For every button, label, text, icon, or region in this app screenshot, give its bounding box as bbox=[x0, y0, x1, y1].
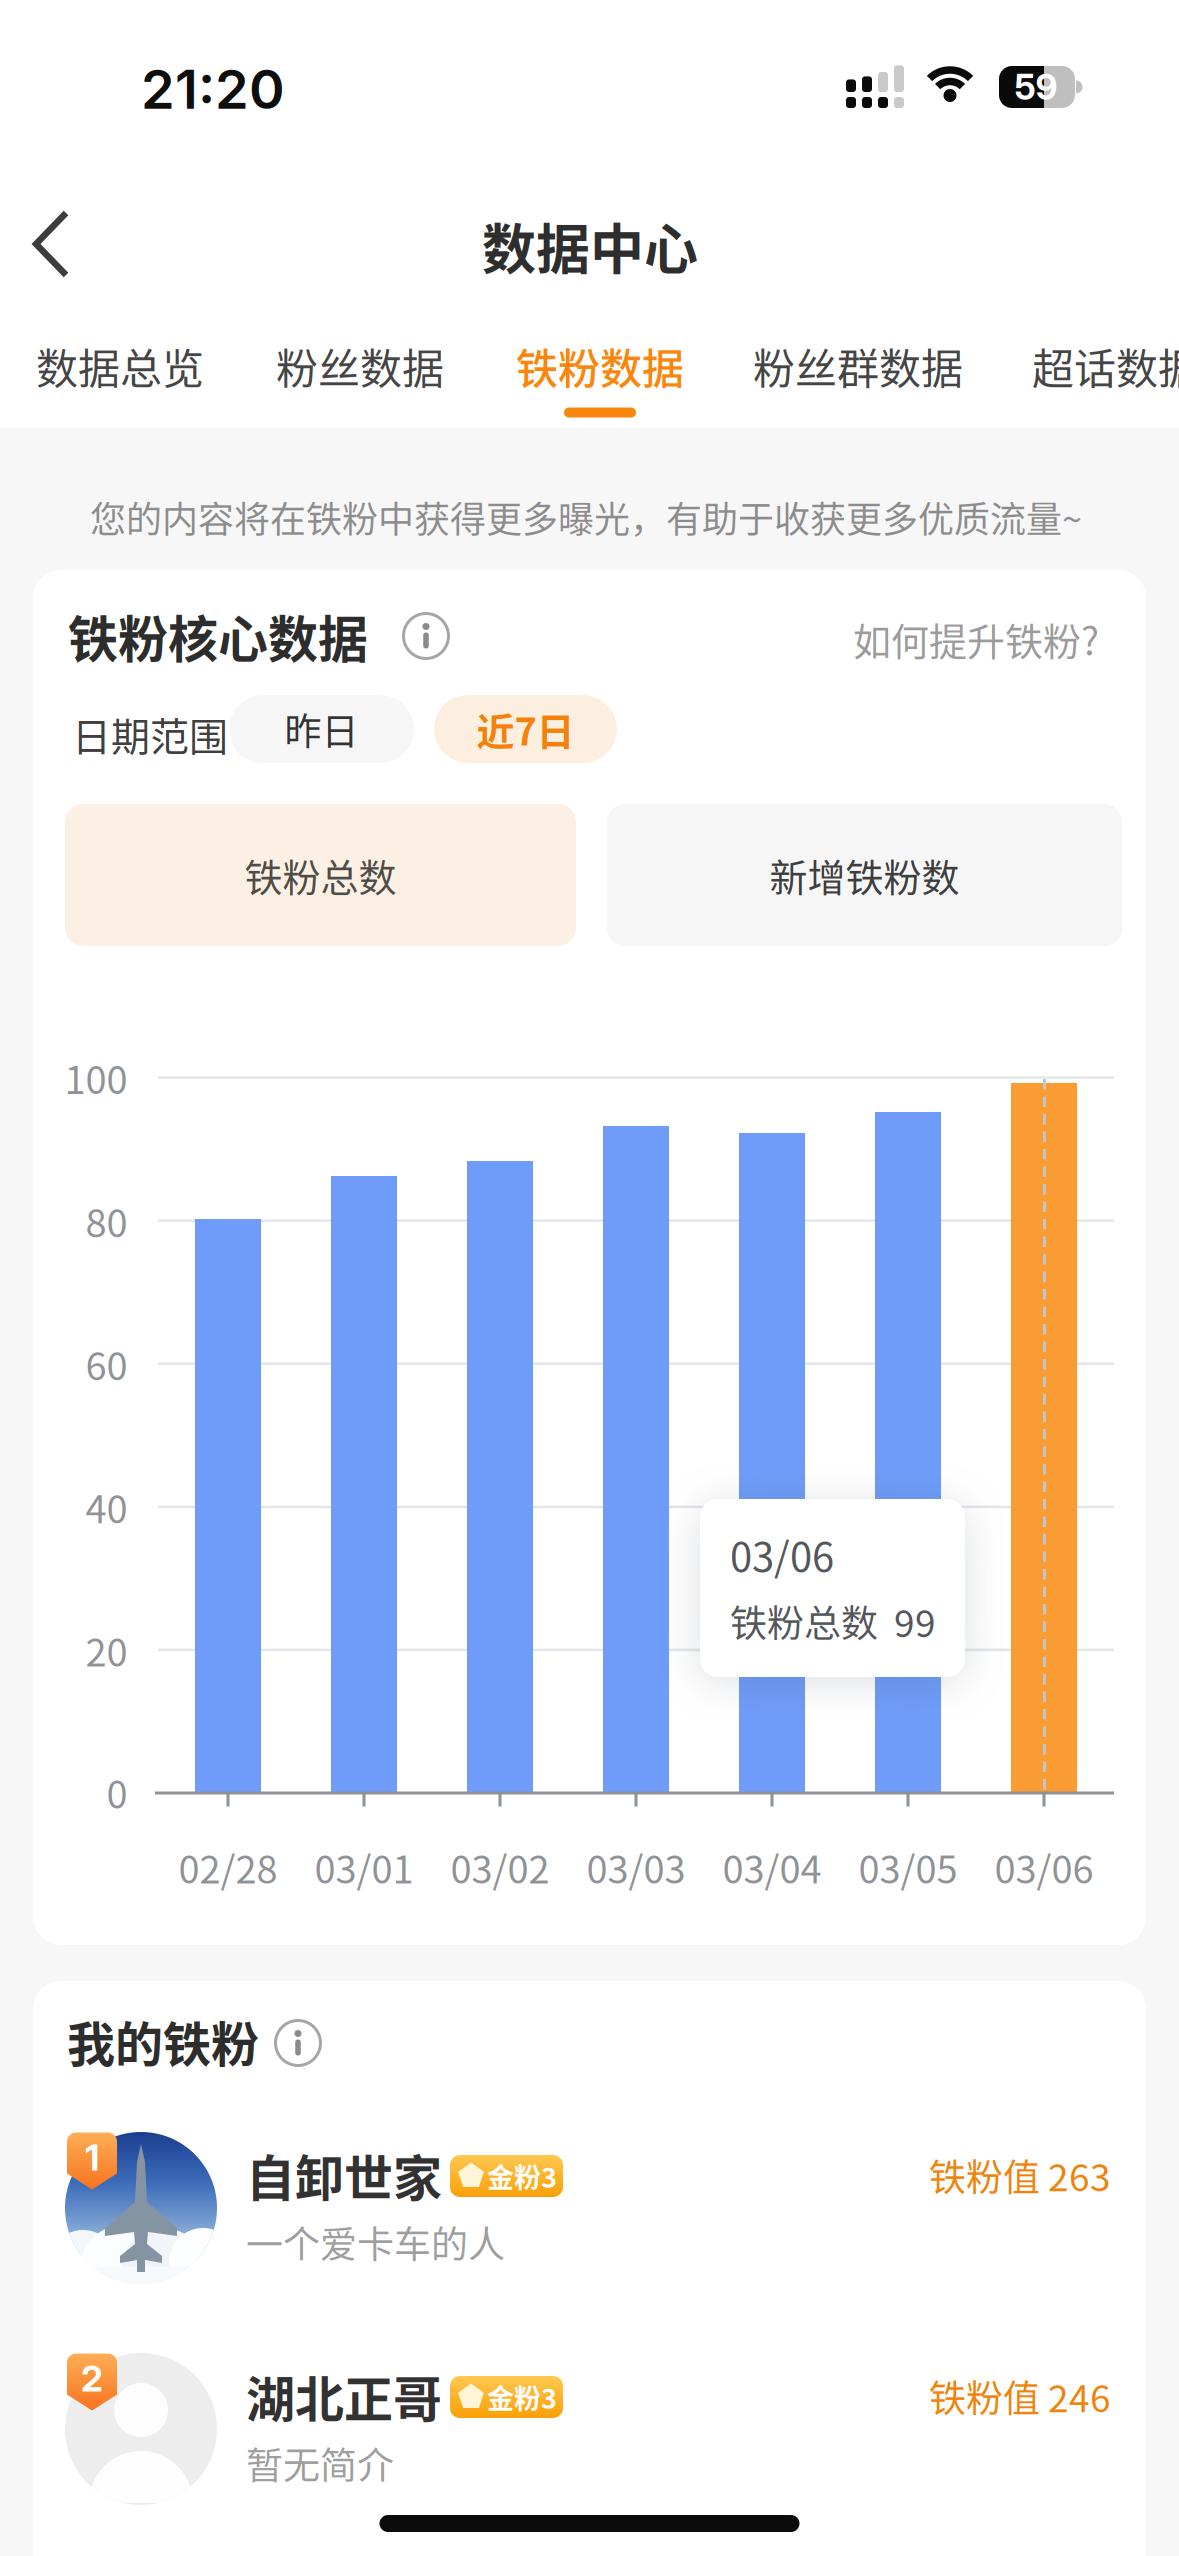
staticText: 超话数据 bbox=[1032, 336, 1179, 396]
staticText: 100 bbox=[64, 1050, 127, 1105]
staticText: 金粉3 bbox=[487, 2377, 557, 2417]
staticText: 80 bbox=[85, 1193, 127, 1248]
staticText: 03/03 bbox=[586, 1839, 685, 1894]
staticText: 03/04 bbox=[722, 1839, 821, 1894]
button[interactable]: Back bbox=[21, 209, 81, 279]
button[interactable]: 1 bbox=[33, 2098, 1146, 2318]
button[interactable]: Info bbox=[275, 2020, 321, 2066]
staticText: 铁粉总数 99 bbox=[730, 1594, 936, 1648]
button[interactable]: 如何提升铁粉? bbox=[779, 611, 1099, 666]
staticText: 您的内容将在铁粉中获得更多曝光，有助于收获更多优质流量~ bbox=[90, 491, 1082, 543]
staticText: 粉丝群数据 bbox=[753, 336, 963, 396]
button[interactable]: 昨日 bbox=[229, 695, 414, 763]
button[interactable]: 近7日 bbox=[434, 695, 617, 763]
staticText: 铁粉数据 bbox=[516, 336, 684, 396]
staticText: 昨日 bbox=[284, 702, 358, 756]
staticText: 如何提升铁粉? bbox=[853, 611, 1099, 666]
staticText: 03/06 bbox=[994, 1839, 1093, 1894]
staticText: 20 bbox=[85, 1622, 127, 1677]
button[interactable]: 粉丝数据 bbox=[254, 320, 466, 412]
staticText: 59 bbox=[1014, 66, 1057, 108]
staticText: 02/28 bbox=[178, 1839, 277, 1894]
staticText: 新增铁粉数 bbox=[769, 847, 959, 902]
staticText: 2 bbox=[81, 2357, 103, 2400]
staticText: 湖北正哥 bbox=[246, 2360, 442, 2431]
button[interactable]: 铁粉数据 bbox=[494, 320, 706, 412]
staticText: 60 bbox=[85, 1336, 127, 1391]
button[interactable]: Info bbox=[403, 613, 449, 659]
staticText: 铁粉核心数据 bbox=[68, 600, 368, 672]
staticText: 40 bbox=[85, 1479, 127, 1534]
staticText: 03/05 bbox=[858, 1839, 957, 1894]
staticText: 0 bbox=[106, 1764, 127, 1819]
staticText: 数据总览 bbox=[36, 336, 204, 396]
staticText: 日期范围 bbox=[72, 706, 228, 762]
staticText: 03/02 bbox=[450, 1839, 549, 1894]
staticText: 03/01 bbox=[314, 1839, 413, 1894]
staticText: 一个爱卡车的人 bbox=[246, 2215, 505, 2269]
staticText: 我的铁粉 bbox=[67, 2006, 259, 2076]
staticText: 21:20 bbox=[141, 56, 285, 122]
button[interactable]: 超话数据 bbox=[1010, 320, 1179, 412]
button[interactable]: 铁粉总数 bbox=[65, 804, 576, 946]
staticText: 1 bbox=[85, 2136, 99, 2179]
staticText: 铁粉值 263 bbox=[929, 2148, 1111, 2202]
button[interactable]: 2 bbox=[33, 2319, 1146, 2539]
staticText: 粉丝数据 bbox=[276, 336, 444, 396]
staticText: 数据中心 bbox=[482, 207, 698, 285]
staticText: 近7日 bbox=[476, 701, 574, 756]
staticText: 铁粉总数 bbox=[244, 847, 396, 902]
button[interactable]: 粉丝群数据 bbox=[731, 320, 985, 412]
staticText: 铁粉值 246 bbox=[929, 2369, 1111, 2423]
staticText: 03/06 bbox=[730, 1525, 834, 1583]
button[interactable]: 新增铁粉数 bbox=[607, 804, 1122, 946]
button[interactable]: 数据总览 bbox=[14, 320, 226, 412]
staticText: 暂无简介 bbox=[246, 2436, 394, 2490]
staticText: 金粉3 bbox=[487, 2156, 557, 2196]
staticText: 自卸世家 bbox=[246, 2139, 442, 2210]
